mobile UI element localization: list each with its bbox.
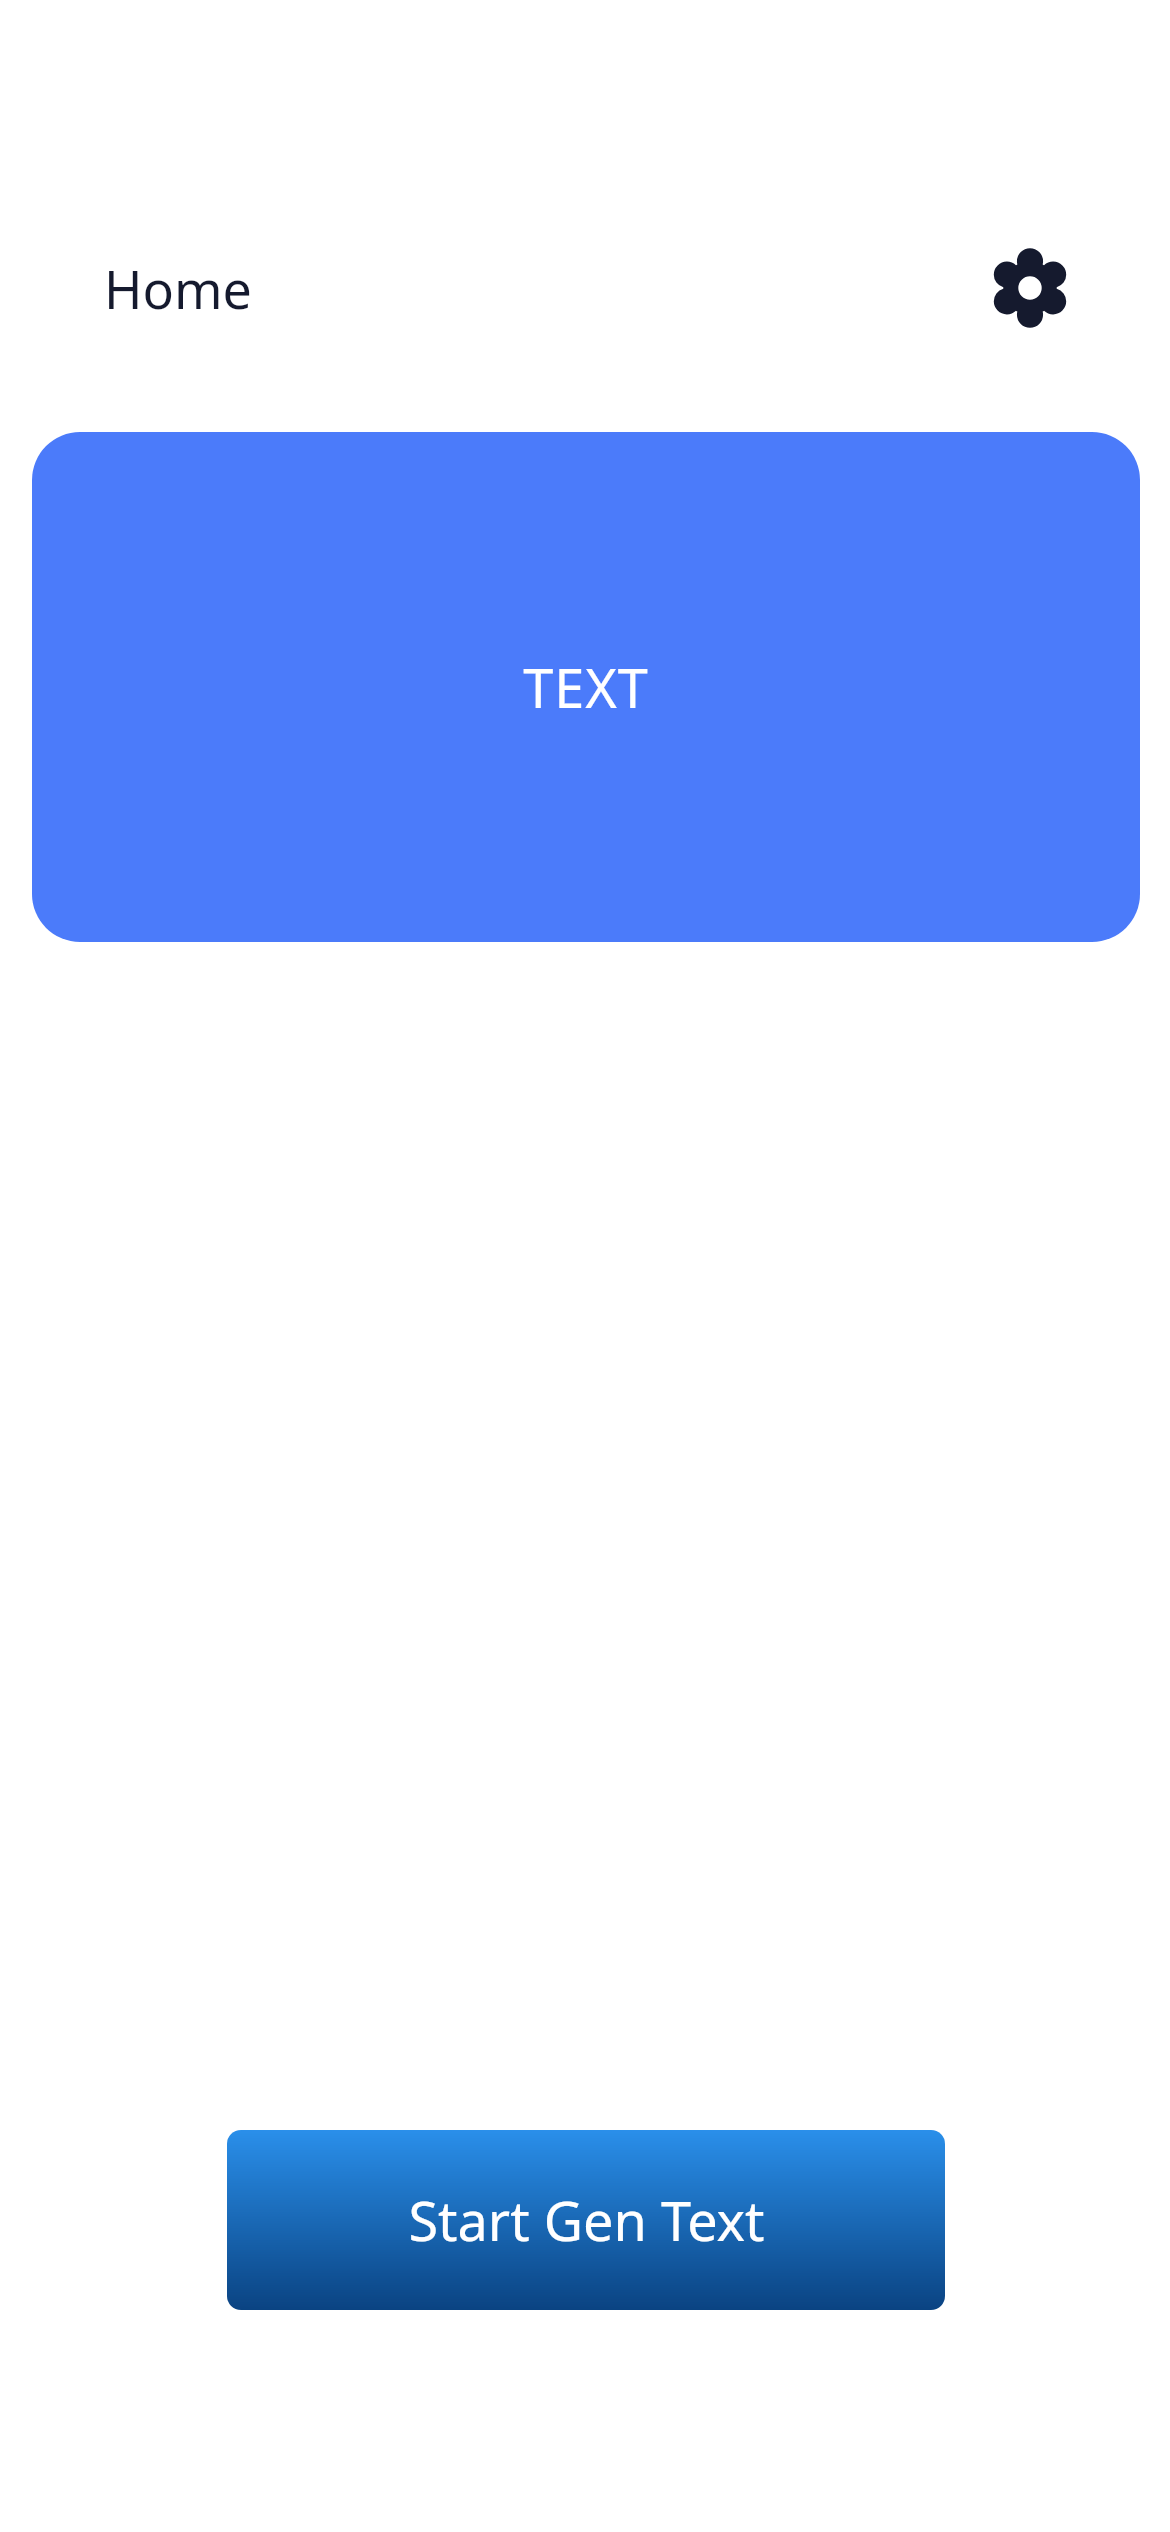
button[interactable]: TEXT xyxy=(32,432,1140,942)
staticText: Home xyxy=(104,253,252,324)
button[interactable]: Settings xyxy=(986,244,1074,332)
button[interactable]: Start Gen Text xyxy=(227,2130,945,2310)
staticText: TEXT xyxy=(523,650,649,724)
staticText: Start Gen Text xyxy=(408,2183,765,2257)
